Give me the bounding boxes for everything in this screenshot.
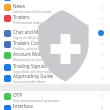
button[interactable]: Algotrading Guide xyxy=(0,73,110,84)
button[interactable]: Chat and Messages xyxy=(0,24,110,40)
button[interactable]: Traders Community xyxy=(0,39,110,50)
button[interactable]: Trading Signals xyxy=(0,62,110,73)
staticText: News xyxy=(13,3,26,9)
staticText: Algotrading Guide xyxy=(13,73,54,79)
button[interactable]: OTP xyxy=(0,91,110,102)
staticText: Sign in to MQL5.community xyxy=(13,35,56,39)
staticText: Learn to build robots xyxy=(13,79,46,83)
staticText: Traders xyxy=(13,14,30,20)
button[interactable]: Traders xyxy=(0,13,110,24)
staticText: Latest news of the world xyxy=(13,9,51,13)
staticText: Traders Community xyxy=(13,40,57,46)
button[interactable]: News xyxy=(0,2,110,13)
staticText: Interface xyxy=(13,103,33,109)
staticText: Professional traders' advice xyxy=(13,20,56,24)
staticText: Account Monitoring xyxy=(13,51,57,57)
button[interactable]: Interface xyxy=(0,102,110,110)
other: Sign in xyxy=(98,30,104,36)
staticText: Chat and Messages xyxy=(13,29,56,35)
staticText: Profiles, articles and more xyxy=(13,46,54,50)
staticText: Monitoring of your account xyxy=(13,57,56,61)
staticText: One-time password generator xyxy=(13,98,60,102)
button[interactable]: Account Monitoring xyxy=(0,50,110,61)
staticText: OTP xyxy=(13,92,22,98)
staticText: Trading Signals xyxy=(13,63,47,69)
staticText: Copy deals of other traders xyxy=(13,69,56,73)
